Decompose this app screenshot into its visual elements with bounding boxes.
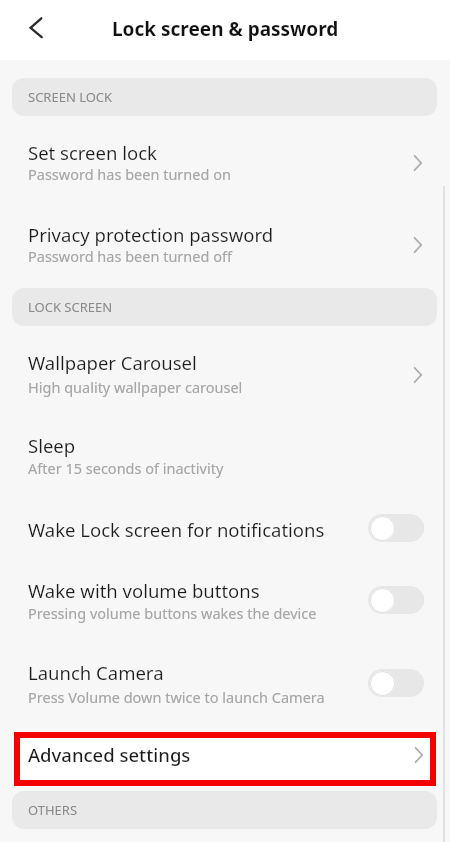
staticText: Wake Lock screen for notifications [28,517,325,542]
staticText: Wallpaper Carousel [28,350,197,375]
button[interactable]: Advanced settings [14,732,436,786]
button[interactable] [368,586,424,614]
staticText: Sleep [28,433,76,458]
staticText: Set screen lock [28,140,157,165]
staticText: Privacy protection password [28,222,274,247]
staticText: Launch Camera [28,660,164,685]
button[interactable] [368,514,424,542]
button[interactable] [22,10,58,46]
staticText: Password has been turned off [28,246,232,266]
button[interactable]: Launch Camera [0,636,450,718]
button[interactable]: Set screen lock [0,116,450,198]
staticText: SCREEN LOCK [28,88,113,106]
button[interactable]: Sleep [0,408,450,490]
staticText: Lock screen & password [112,16,339,42]
staticText: OTHERS [28,801,78,819]
button[interactable] [368,669,424,697]
staticText: High quality wallpaper carousel [28,377,243,397]
staticText: Wake with volume buttons [28,578,260,603]
staticText: Press Volume down twice to launch Camera [28,687,325,707]
button[interactable]: Wallpaper Carousel [0,326,450,408]
staticText: LOCK SCREEN [28,298,113,316]
staticText: After 15 seconds of inactivity [28,458,224,478]
staticText: Pressing volume buttons wakes the device [28,603,317,623]
staticText: Advanced settings [28,742,191,767]
staticText: Password has been turned on [28,164,231,184]
button[interactable]: Wake Lock screen for notifications [0,496,450,560]
button[interactable]: Wake with volume buttons [0,554,450,636]
button[interactable]: Privacy protection password [0,198,450,280]
